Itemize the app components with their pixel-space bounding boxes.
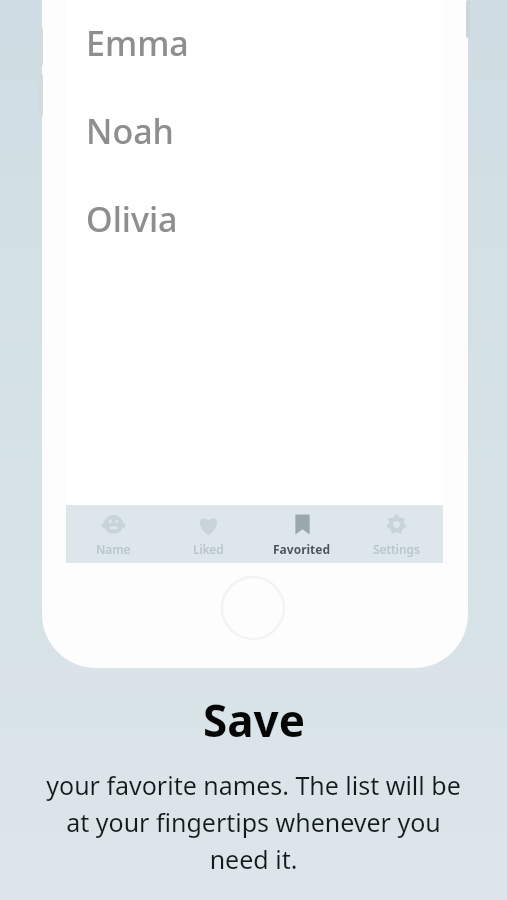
staticText: Save xyxy=(203,690,305,750)
staticText: Emma xyxy=(86,20,189,66)
staticText: Favorited xyxy=(273,541,331,557)
button[interactable]: Name xyxy=(66,505,161,563)
button[interactable]: Noah xyxy=(66,108,443,154)
staticText: Settings xyxy=(373,541,420,557)
button[interactable]: Liked xyxy=(161,505,255,563)
button[interactable]: Favorited xyxy=(255,505,349,563)
button[interactable]: Settings xyxy=(349,505,443,563)
staticText: your favorite names. The list will be at… xyxy=(46,768,461,876)
staticText: Name xyxy=(96,541,131,557)
button[interactable]: Emma xyxy=(66,20,443,66)
staticText: Olivia xyxy=(86,196,178,242)
staticText: Noah xyxy=(86,108,174,154)
button[interactable]: Olivia xyxy=(66,196,443,242)
staticText: Liked xyxy=(193,541,224,557)
